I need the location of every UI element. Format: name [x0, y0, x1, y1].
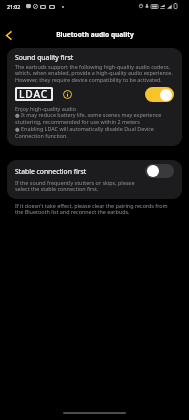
- staticText: 21:02: [7, 3, 21, 10]
- button[interactable]: LDAC codec: [15, 87, 53, 101]
- button[interactable]: Toggle off: [145, 164, 174, 178]
- staticText: If the sound frequently stutters or skip…: [15, 179, 136, 193]
- staticText: Stable connection first: [15, 167, 87, 176]
- staticText: Bluetooth audio quality: [56, 30, 134, 39]
- button[interactable]: Back: [0, 23, 18, 47]
- button[interactable]: Codec info: [62, 89, 73, 100]
- staticText: The earbuds support the following high-q…: [15, 63, 177, 84]
- staticText: Sound quality first: [15, 53, 74, 62]
- staticText: Enjoy high-quality audio ● It may reduce…: [15, 105, 177, 140]
- button[interactable]: Toggle on: [145, 87, 174, 102]
- staticText: If it doesn't take effect, please clear …: [15, 202, 177, 216]
- staticText: LDAC: [19, 87, 49, 101]
